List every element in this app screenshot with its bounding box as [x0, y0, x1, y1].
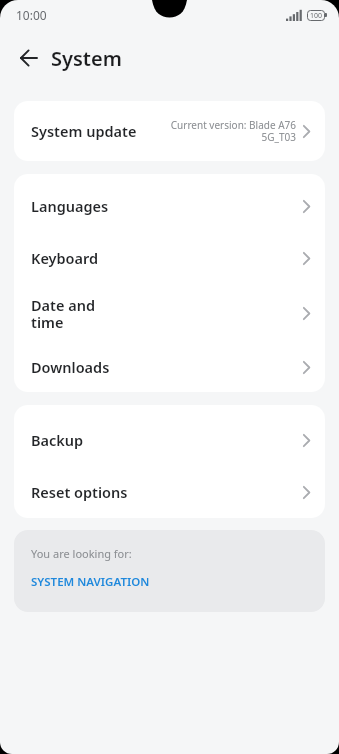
button[interactable]: Reset options — [14, 466, 325, 518]
staticText: 10:00 — [16, 7, 47, 23]
button[interactable]: Keyboard — [14, 232, 325, 284]
staticText: 100 — [310, 11, 323, 21]
staticText: Languages — [31, 196, 109, 216]
staticText: You are looking for: — [31, 546, 132, 561]
staticText: Reset options — [31, 482, 128, 502]
button[interactable]: Languages — [14, 180, 325, 232]
button[interactable]: Downloads — [14, 342, 325, 392]
staticText: Backup — [31, 430, 84, 450]
button[interactable]: System update — [14, 101, 325, 161]
staticText: SYSTEM NAVIGATION — [31, 574, 150, 590]
staticText: System update — [31, 121, 137, 141]
staticText: Keyboard — [31, 248, 99, 268]
button[interactable]: Backup — [14, 414, 325, 466]
staticText: Current version: Blade A76 5G_T03 — [170, 118, 296, 144]
button[interactable]: Date and time — [14, 284, 325, 342]
staticText: System — [51, 45, 122, 72]
button[interactable]: You are looking for: — [14, 530, 325, 612]
staticText: Date and time — [31, 295, 96, 332]
button[interactable] — [20, 49, 38, 67]
staticText: Downloads — [31, 357, 110, 377]
